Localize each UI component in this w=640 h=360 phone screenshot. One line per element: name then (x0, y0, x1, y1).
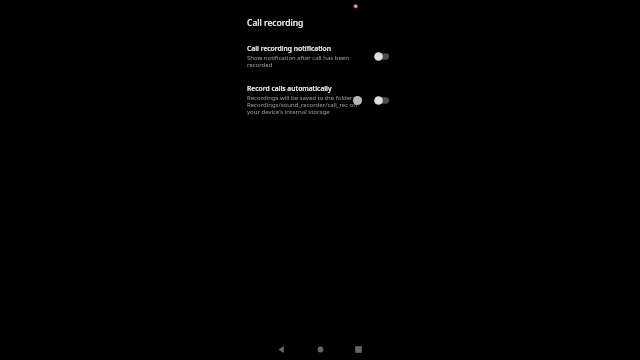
staticText: Call recording notification (247, 44, 331, 53)
button[interactable]: Call recording notification (240, 44, 400, 69)
staticText: Record calls automatically (247, 84, 332, 93)
button[interactable]: Back (274, 342, 288, 356)
button[interactable]: Recent apps (351, 342, 365, 356)
staticText: Show notification after call has been re… (247, 54, 361, 69)
staticText: Recordings will be saved to the folder R… (247, 94, 361, 116)
button[interactable]: Off (374, 51, 392, 62)
button[interactable]: Home (313, 342, 327, 356)
other: Recording indicator (351, 1, 361, 11)
button[interactable]: Off (374, 95, 392, 106)
button[interactable]: Record calls automatically (240, 84, 400, 116)
staticText: Call recording (247, 17, 304, 29)
button[interactable]: Call recording (247, 17, 304, 29)
